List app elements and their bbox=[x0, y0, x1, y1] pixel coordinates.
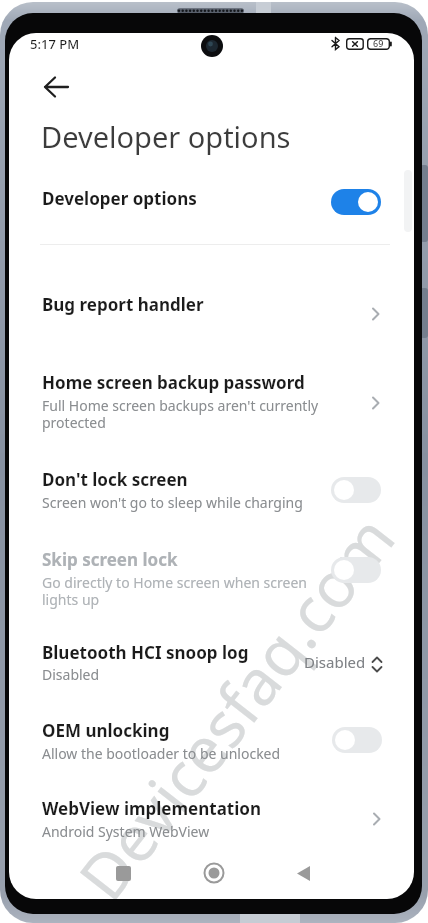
button[interactable]: Developer options bbox=[9, 178, 413, 224]
staticText: 69 bbox=[373, 37, 384, 49]
staticText: Android System WebView bbox=[42, 822, 210, 841]
staticText: Allow the bootloader to be unlocked bbox=[42, 744, 281, 763]
staticText: Disabled bbox=[304, 652, 366, 672]
button[interactable]: Skip screen lock bbox=[9, 541, 413, 613]
staticText: Home screen backup password bbox=[42, 371, 305, 394]
staticText: OEM unlocking bbox=[42, 719, 170, 742]
button[interactable] bbox=[196, 855, 232, 891]
staticText: Developer options bbox=[41, 117, 291, 156]
staticText: Bug report handler bbox=[42, 293, 204, 316]
staticText: Disabled bbox=[42, 665, 100, 684]
staticText: 5:17 PM bbox=[30, 35, 80, 53]
button[interactable] bbox=[331, 477, 381, 503]
button[interactable] bbox=[331, 189, 381, 215]
staticText: WebView implementation bbox=[42, 797, 261, 820]
staticText: Bluetooth HCI snoop log bbox=[42, 641, 249, 664]
staticText: Go directly to Home screen when screen bbox=[42, 573, 307, 592]
button[interactable]: OEM unlocking bbox=[9, 712, 413, 768]
staticText: Don't lock screen bbox=[42, 468, 188, 491]
button[interactable] bbox=[331, 557, 381, 583]
button[interactable]: Bug report handler bbox=[9, 285, 413, 337]
button[interactable] bbox=[36, 70, 72, 106]
button[interactable]: Don't lock screen bbox=[9, 461, 413, 517]
button[interactable]: Bluetooth HCI snoop log bbox=[9, 634, 413, 690]
button[interactable] bbox=[285, 855, 321, 891]
staticText: Full Home screen backups aren't currentl… bbox=[42, 396, 319, 415]
staticText: protected bbox=[42, 413, 106, 432]
button[interactable]: Home screen backup password bbox=[9, 365, 413, 435]
button[interactable] bbox=[332, 727, 382, 753]
staticText: Skip screen lock bbox=[42, 548, 178, 571]
button[interactable]: WebView implementation bbox=[9, 790, 413, 846]
staticText: lights up bbox=[42, 590, 100, 609]
staticText: Screen won't go to sleep while charging bbox=[42, 493, 303, 512]
button[interactable] bbox=[105, 855, 141, 891]
staticText: Developer options bbox=[42, 187, 197, 210]
